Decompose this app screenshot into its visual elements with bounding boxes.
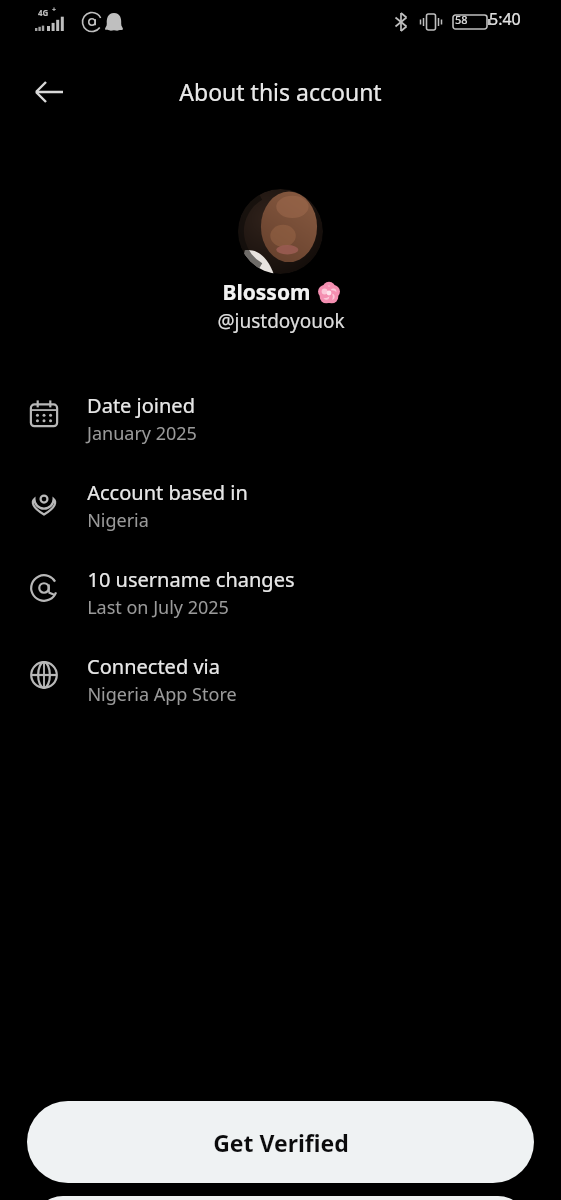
staticText: Connected via — [87, 653, 220, 680]
button[interactable]: More options — [33, 1196, 528, 1200]
staticText: 58 — [455, 12, 468, 27]
staticText: Get Verified — [213, 1127, 349, 1158]
staticText: Nigeria App Store — [87, 682, 237, 707]
staticText: Blossom — [222, 278, 311, 307]
staticText: @justdoyouok — [217, 308, 345, 334]
staticText: Date joined — [87, 392, 195, 419]
staticText: 10 username changes — [87, 566, 295, 593]
button[interactable]: Get Verified — [27, 1101, 534, 1183]
staticText: Nigeria — [87, 508, 149, 533]
staticText: Last on July 2025 — [87, 595, 229, 620]
staticText: + — [52, 5, 57, 15]
staticText: Account based in — [87, 479, 248, 506]
button[interactable]: Profile photo — [238, 189, 323, 274]
button[interactable]: 10 username changes — [0, 560, 561, 647]
staticText: About this account — [179, 76, 382, 107]
button[interactable]: Date joined — [0, 386, 561, 473]
button[interactable]: Connected via — [0, 647, 561, 734]
button[interactable]: Back — [22, 64, 78, 120]
staticText: January 2025 — [87, 421, 197, 446]
staticText: 4G — [38, 7, 49, 18]
staticText: 5:40 — [489, 8, 521, 30]
button[interactable]: Account based in — [0, 473, 561, 560]
